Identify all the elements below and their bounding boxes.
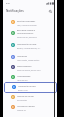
staticText: Bateria, Armazenamento, Mem	[17, 47, 41, 49]
staticText: Gerenciamento	[17, 65, 32, 68]
staticText: Atualização de soft	[18, 85, 36, 88]
button[interactable]: Gerenciamento	[3, 62, 57, 73]
staticText: Assistência remota	[17, 105, 35, 108]
button[interactable]: Funções avançadas	[3, 17, 57, 28]
staticText: 9:41	[6, 2, 11, 5]
button[interactable]: Acessibilidade	[3, 72, 57, 83]
staticText: Idioma e teclado, Data e hora	[17, 69, 41, 71]
button[interactable]: Bem-estar Digital e controle parental	[3, 28, 57, 39]
button[interactable]: Aplicativos	[3, 52, 57, 63]
staticText: Notificações	[6, 9, 24, 13]
staticText: Acessibilidade	[17, 75, 31, 78]
staticText: Apps padrão, Configurações	[17, 59, 40, 61]
staticText: Baixar e inst	[18, 89, 28, 91]
button[interactable]: Assistência remota	[3, 102, 57, 113]
staticText: Leitor de tela	[17, 79, 28, 81]
staticText: Funções avançadas	[17, 20, 36, 23]
staticText: Labs, Link para Windows	[17, 24, 37, 26]
button[interactable]: Manual do celular	[3, 92, 57, 103]
staticText: Manual do celular	[17, 95, 34, 98]
button[interactable]: Search	[47, 8, 54, 15]
staticText: Informações	[17, 99, 28, 101]
staticText: Bem-estar Digital e controle parental	[17, 29, 41, 35]
staticText: Tempo de uso, Descanso	[17, 36, 37, 38]
staticText: Manutenção do disp.	[17, 43, 37, 46]
staticText: Suporte ao	[17, 109, 26, 111]
button[interactable]: Manutenção do disp.	[3, 40, 57, 51]
button[interactable]: Atualização de soft	[4, 82, 57, 93]
staticText: Aplicativos	[17, 55, 28, 58]
